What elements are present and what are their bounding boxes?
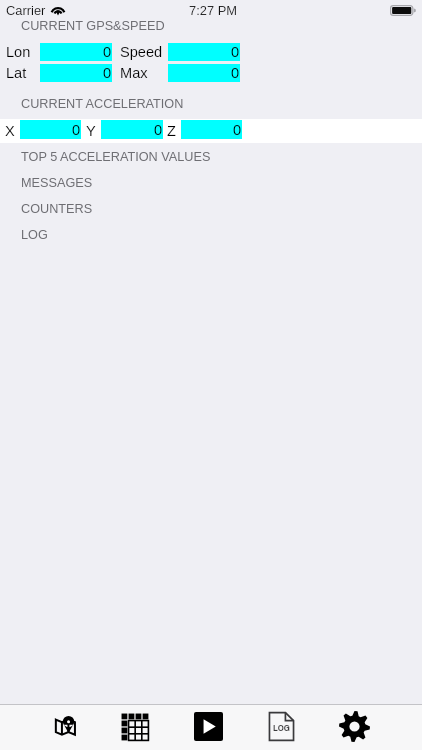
button[interactable]: 0: [20, 120, 81, 139]
staticText: 0: [231, 65, 240, 81]
button[interactable]: Table: [104, 705, 164, 750]
staticText: Lon: [6, 44, 31, 60]
staticText: Y: [86, 123, 96, 139]
staticText: LOG: [273, 721, 290, 734]
button[interactable]: 0: [168, 64, 240, 82]
staticText: Carrier: [6, 3, 46, 17]
staticText: 0: [103, 65, 112, 81]
button[interactable]: COUNTERS: [0, 195, 422, 221]
button[interactable]: Play: [178, 705, 238, 750]
staticText: 0: [72, 122, 81, 138]
button[interactable]: LOG: [0, 221, 422, 247]
button[interactable]: 0: [101, 120, 163, 139]
staticText: 0: [154, 122, 163, 138]
staticText: Lat: [6, 65, 27, 81]
staticText: COUNTERS: [21, 202, 93, 216]
staticText: MESSAGES: [21, 176, 93, 190]
button[interactable]: 0: [181, 120, 242, 139]
staticText: CURRENT GPS&SPEED: [21, 19, 165, 33]
staticText: LOG: [21, 228, 48, 242]
button[interactable]: 0: [168, 43, 240, 61]
staticText: X: [5, 123, 15, 139]
staticText: 0: [231, 44, 240, 60]
button[interactable]: Map: [35, 705, 95, 750]
staticText: TOP 5 ACCELERATION VALUES: [21, 150, 211, 164]
button[interactable]: [0, 119, 422, 143]
staticText: CURRENT ACCELERATION: [21, 97, 184, 111]
staticText: 0: [233, 122, 242, 138]
staticText: Max: [120, 65, 148, 81]
staticText: 0: [103, 44, 112, 60]
button[interactable]: Log: [251, 705, 311, 750]
staticText: Speed: [120, 44, 163, 60]
button[interactable]: 0: [40, 64, 112, 82]
button[interactable]: 0: [40, 43, 112, 61]
button[interactable]: Settings: [324, 705, 384, 750]
staticText: Z: [167, 123, 176, 139]
button[interactable]: MESSAGES: [0, 169, 422, 195]
staticText: 7:27 PM: [189, 3, 238, 17]
button[interactable]: TOP 5 ACCELERATION VALUES: [0, 143, 422, 169]
